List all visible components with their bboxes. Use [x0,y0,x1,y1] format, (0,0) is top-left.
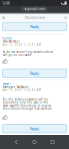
staticText: So do we know if our stimulus check [2,50,52,54]
staticText: Apr 13, 2020 1:12:41 AM [2,43,40,46]
staticText: Employee Tax Expert [2,85,28,89]
button[interactable]: Menu [2,16,5,19]
button[interactable]: Like [2,115,8,120]
staticText: 5:08 [2,0,9,6]
button[interactable]: Like [2,59,8,63]
button[interactable]: Back [15,139,18,144]
staticText: Apr 13, 2020 7:22:40 AM [2,88,40,92]
staticText: MaryK1 [2,82,11,85]
button[interactable]: bulldo [2,37,12,40]
button[interactable]: Home [33,140,36,144]
button[interactable]: Address bar [22,7,47,11]
button[interactable]: Recent apps [51,140,54,144]
button[interactable]: Reply [2,69,66,78]
staticText: ttlc.intuit.com [25,16,44,19]
staticText: ▲▂█ [60,1,66,4]
staticText: same way the filers chose to receive [2,104,51,107]
staticText: New Member [2,40,19,43]
staticText: their refund through that method. [2,107,52,110]
staticText: Reply [30,126,39,131]
button[interactable]: Account [64,16,67,19]
staticText: Reply [30,24,39,29]
staticText: depositing onto the card in the [2,101,48,104]
staticText: google.com [27,7,44,11]
staticText: Yes, the stimulus payment will be [2,98,48,101]
staticText: will go on our cards? [2,53,31,57]
staticText: bulldo [2,37,12,40]
staticText: Reply [30,71,39,76]
button[interactable]: MaryK1 [2,82,11,85]
button[interactable]: Reply [2,124,66,133]
button[interactable]: Reply [2,22,66,31]
